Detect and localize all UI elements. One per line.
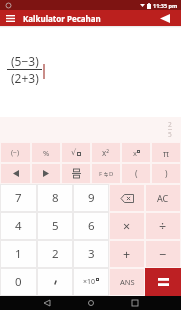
staticText: (2+3) <box>11 70 39 86</box>
button[interactable]: 2 <box>37 240 73 268</box>
staticText: x² <box>102 147 110 158</box>
button[interactable]: % <box>31 142 61 163</box>
button[interactable] <box>88 300 94 306</box>
staticText: D <box>109 170 114 178</box>
button[interactable]: 0 <box>0 268 37 296</box>
button[interactable]: 7 <box>0 184 37 212</box>
button[interactable]: x² <box>91 142 121 163</box>
button[interactable] <box>109 184 145 212</box>
button[interactable]: 5 <box>37 212 73 240</box>
staticText: 8 <box>52 190 59 206</box>
staticText: 5 <box>52 218 59 234</box>
staticText: 7 <box>15 190 22 206</box>
button[interactable]: x <box>121 142 151 163</box>
button[interactable] <box>145 268 181 296</box>
staticText: ) <box>165 168 168 180</box>
staticText: ×10 <box>83 277 96 287</box>
button[interactable]: ANS <box>109 268 145 296</box>
staticText: × <box>123 218 131 235</box>
button[interactable]: (−) <box>0 142 31 163</box>
button[interactable]: ) <box>151 163 181 184</box>
staticText: AC <box>157 192 169 204</box>
button[interactable] <box>44 300 50 306</box>
staticText: √ <box>71 148 77 157</box>
button[interactable]: ×10 <box>73 268 109 296</box>
button[interactable] <box>132 300 138 306</box>
staticText: 2 <box>52 246 59 262</box>
button[interactable]: 4 <box>0 212 37 240</box>
staticText: 11:35 pm <box>153 2 178 9</box>
button[interactable]: 6 <box>73 212 109 240</box>
button[interactable] <box>160 14 170 23</box>
button[interactable]: ÷ <box>145 212 181 240</box>
staticText: 6 <box>88 218 95 234</box>
staticText: π <box>163 147 169 159</box>
staticText: 2 <box>168 120 172 129</box>
button[interactable] <box>37 268 73 296</box>
staticText: % <box>43 148 50 158</box>
staticText: Kalkulator Pecahan <box>23 13 101 24</box>
button[interactable]: × <box>109 212 145 240</box>
button[interactable]: 8 <box>37 184 73 212</box>
staticText: + <box>123 246 131 263</box>
button[interactable]: + <box>109 240 145 268</box>
button[interactable]: 9 <box>73 184 109 212</box>
staticText: ( <box>135 168 138 180</box>
button[interactable]: 3 <box>73 240 109 268</box>
button[interactable]: − <box>145 240 181 268</box>
staticText: 5 <box>168 130 172 139</box>
staticText: x <box>133 148 137 158</box>
staticText: 3 <box>88 246 95 262</box>
staticText: 9 <box>88 190 95 206</box>
button[interactable]: 1 <box>0 240 37 268</box>
staticText: ANS <box>120 277 135 287</box>
staticText: 0 <box>15 274 22 290</box>
staticText: F <box>99 170 103 178</box>
button[interactable]: F <box>91 163 121 184</box>
staticText: ÷ <box>159 218 167 235</box>
button[interactable] <box>31 163 61 184</box>
staticText: (−) <box>11 148 20 158</box>
button[interactable]: π <box>151 142 181 163</box>
staticText: 1 <box>15 246 22 262</box>
button[interactable] <box>0 163 31 184</box>
button[interactable]: AC <box>145 184 181 212</box>
staticText: 4 <box>15 218 22 234</box>
staticText: (5−3) <box>11 53 39 69</box>
button[interactable]: √ <box>61 142 91 163</box>
staticText: − <box>159 246 167 263</box>
button[interactable] <box>6 15 15 22</box>
button[interactable]: ( <box>121 163 151 184</box>
button[interactable] <box>61 163 91 184</box>
